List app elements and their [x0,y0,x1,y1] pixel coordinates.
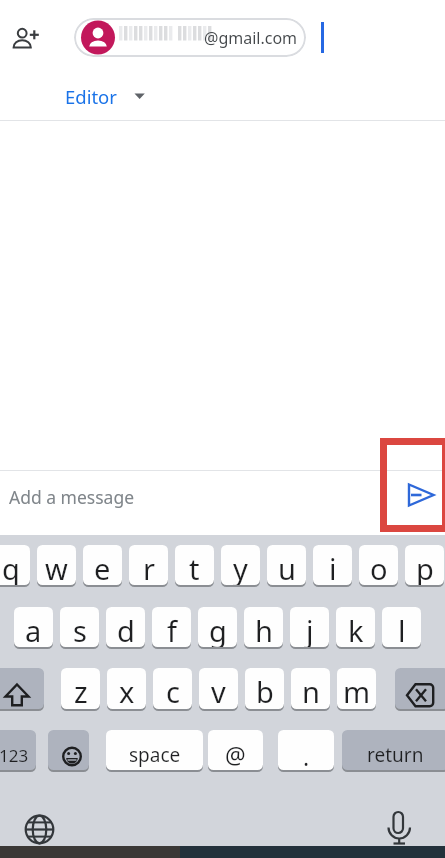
staticText: v [211,672,226,709]
staticText: j [306,611,314,647]
button[interactable]: t [175,545,214,585]
button[interactable]: d [106,607,145,647]
staticText: t [189,549,200,585]
staticText: y [233,549,248,585]
button[interactable] [0,668,44,709]
button[interactable]: z [61,668,100,709]
staticText: a [25,611,42,647]
button[interactable] [0,0,60,60]
staticText: return [367,742,424,768]
button[interactable]: . [278,730,334,770]
staticText: c [166,672,180,709]
button[interactable]: Editor [58,80,154,112]
button[interactable]: f [152,607,191,647]
button[interactable]: q [0,545,30,585]
staticText: l [398,611,406,647]
staticText: b [256,672,274,709]
button[interactable]: c [153,668,192,709]
staticText: n [302,672,320,709]
staticText: r [143,549,155,585]
staticText: i [329,549,337,585]
staticText: @ [225,739,246,770]
button[interactable]: y [221,545,260,585]
button[interactable]: k [336,607,375,647]
staticText: space [129,742,181,768]
staticText: o [370,549,388,585]
button[interactable]: 123 [0,730,36,770]
staticText: @gmail.com [204,27,298,49]
staticText: q [2,549,20,585]
button[interactable] [396,476,442,516]
button[interactable]: return [342,730,445,770]
staticText: g [209,611,227,647]
staticText: p [416,549,434,585]
button[interactable]: o [359,545,398,585]
staticText: h [255,611,273,647]
button[interactable]: space [106,730,203,770]
button[interactable]: i [313,545,352,585]
staticText: Editor [65,84,117,109]
staticText: z [74,672,88,709]
button[interactable]: s [60,607,99,647]
staticText: d [117,611,135,647]
button[interactable]: h [244,607,283,647]
button[interactable]: g [198,607,237,647]
button[interactable]: l [382,607,421,647]
staticText: u [278,549,296,585]
button[interactable]: x [107,668,146,709]
button[interactable]: w [37,545,76,585]
button[interactable]: b [245,668,284,709]
button[interactable]: n [291,668,330,709]
button[interactable]: r [129,545,168,585]
button[interactable]: a [14,607,53,647]
staticText: w [45,549,68,585]
button[interactable]: u [267,545,306,585]
button[interactable] [380,804,420,850]
button[interactable]: e [83,545,122,585]
button[interactable]: j [290,607,329,647]
staticText: k [348,611,364,647]
button[interactable]: Add a message [0,470,445,528]
staticText: m [343,672,371,709]
button[interactable]: v [199,668,238,709]
button[interactable] [18,808,62,852]
staticText: x [119,672,135,709]
button[interactable] [48,730,89,770]
staticText: s [73,611,87,647]
staticText: f [167,611,177,647]
button[interactable]: m [337,668,376,709]
staticText: Add a message [9,485,135,509]
button[interactable]: @gmail.com [74,18,306,57]
staticText: 123 [0,744,29,767]
staticText: . [303,741,310,770]
button[interactable]: p [405,545,444,585]
staticText: e [94,549,111,585]
button[interactable]: @ [208,730,263,770]
button[interactable] [395,668,445,709]
